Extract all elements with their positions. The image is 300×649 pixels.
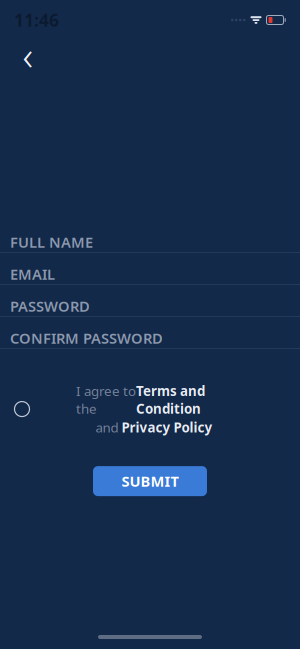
button[interactable]: Terms and Condition — [136, 382, 205, 417]
staticText: I agree to the — [76, 382, 136, 417]
button[interactable]: Privacy Policy — [121, 418, 212, 436]
staticText: Terms and Condition — [136, 382, 205, 417]
staticText: CONFIRM PASSWORD — [10, 328, 163, 348]
staticText: ‹ — [22, 28, 33, 81]
staticText: and — [95, 418, 121, 436]
staticText: SUBMIT — [121, 471, 178, 491]
staticText: Privacy Policy — [121, 418, 212, 436]
staticText: PASSWORD — [10, 296, 90, 316]
staticText: EMAIL — [10, 264, 55, 284]
button[interactable]: Back — [8, 38, 48, 72]
staticText: 11:46 — [14, 8, 59, 31]
button[interactable]: SUBMIT — [93, 466, 207, 496]
button[interactable]: Agree to terms — [0, 389, 44, 429]
staticText: FULL NAME — [10, 232, 93, 252]
